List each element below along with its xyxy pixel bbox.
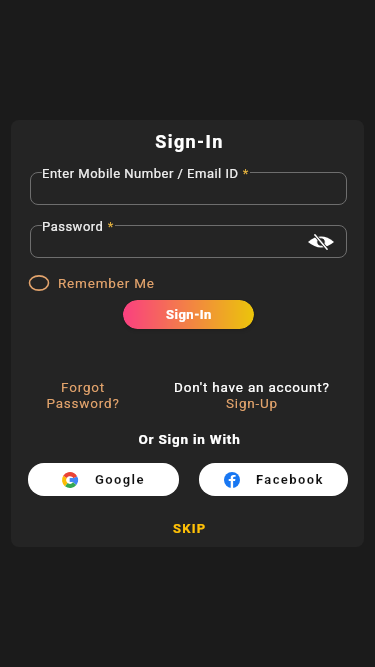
button[interactable] xyxy=(30,172,347,205)
staticText: * xyxy=(104,219,114,234)
staticText: * xyxy=(239,166,249,181)
button[interactable] xyxy=(30,225,347,258)
button[interactable]: Remember Me xyxy=(29,274,155,292)
button[interactable]: SKIP xyxy=(163,517,217,540)
staticText: Sign-In xyxy=(166,307,212,322)
button[interactable]: Sign-In xyxy=(123,300,254,329)
button[interactable]: Facebook xyxy=(199,463,348,496)
staticText: Google xyxy=(95,472,145,487)
staticText: Enter Mobile Number / Email ID xyxy=(42,166,239,181)
button[interactable]: Toggle password visibility xyxy=(307,226,334,257)
staticText: Remember Me xyxy=(58,275,155,291)
staticText: Facebook xyxy=(256,472,324,487)
button[interactable]: Sign-Up xyxy=(226,395,278,411)
staticText: Or Sign in With xyxy=(13,431,364,447)
button[interactable]: Google xyxy=(28,463,179,496)
button[interactable]: Forgot Password? xyxy=(13,379,153,411)
staticText: Password xyxy=(42,219,104,234)
staticText: Sign-In xyxy=(13,131,364,152)
staticText: Don't have an account? xyxy=(174,379,330,395)
